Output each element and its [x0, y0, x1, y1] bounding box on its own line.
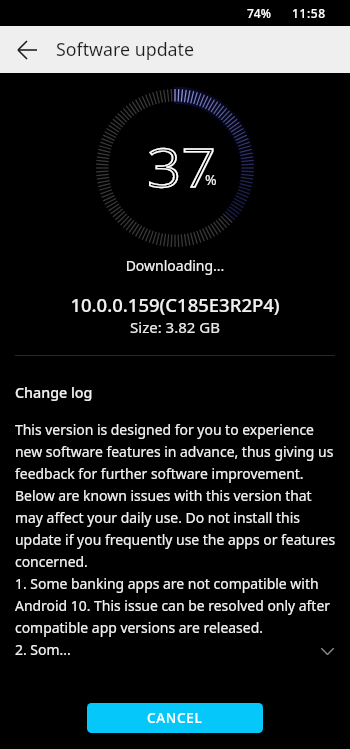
staticText: may affect your daily use. Do not instal…	[15, 508, 300, 527]
staticText: new software features in advance, thus g…	[15, 442, 334, 461]
staticText: 74%	[247, 5, 271, 21]
staticText: 11:58	[292, 5, 326, 21]
staticText: feedback for further software improvemen…	[15, 464, 304, 483]
staticText: Android 10. This issue can be resolved o…	[15, 596, 331, 615]
staticText: Size: 3.82 GB	[0, 317, 350, 337]
staticText: Change log	[15, 383, 93, 402]
button[interactable]: Back	[0, 26, 54, 73]
staticText: update if you frequently use the apps or…	[15, 530, 336, 549]
staticText: %	[205, 170, 217, 189]
staticText: 10.0.0.159(C185E3R2P4)	[0, 292, 350, 317]
staticText: compatible app versions are released.	[15, 618, 263, 637]
staticText: Below are known issues with this version…	[15, 486, 312, 505]
staticText: Software update	[56, 37, 195, 61]
staticText: concerned.	[15, 552, 88, 571]
button[interactable]: Expand change log	[313, 637, 341, 665]
staticText: 1. Some banking apps are not compatible …	[15, 574, 319, 593]
staticText: 2. Som...	[15, 640, 71, 659]
staticText: CANCEL	[147, 709, 203, 727]
button[interactable]: CANCEL	[87, 703, 263, 733]
staticText: This version is designed for you to expe…	[15, 420, 314, 439]
staticText: Downloading...	[0, 256, 350, 275]
staticText: 37	[147, 130, 216, 202]
